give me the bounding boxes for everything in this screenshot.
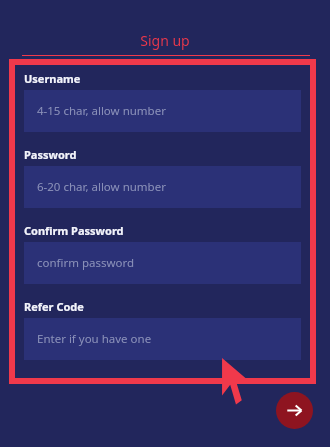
button[interactable]: 6-20 char, allow number [24,166,301,208]
button[interactable]: Continue [276,392,313,429]
staticText: Sign up [140,31,190,50]
button[interactable]: confirm password [24,242,301,284]
staticText: Password [24,147,77,162]
button[interactable]: 4-15 char, allow number [24,90,301,132]
staticText: Confirm Password [24,223,124,238]
staticText: 6-20 char, allow number [37,179,166,195]
staticText: confirm password [37,255,135,271]
button[interactable]: Enter if you have one [24,318,301,360]
staticText: 4-15 char, allow number [37,103,166,119]
staticText: Refer Code [24,299,84,314]
staticText: Enter if you have one [37,331,152,347]
staticText: Username [24,71,81,86]
